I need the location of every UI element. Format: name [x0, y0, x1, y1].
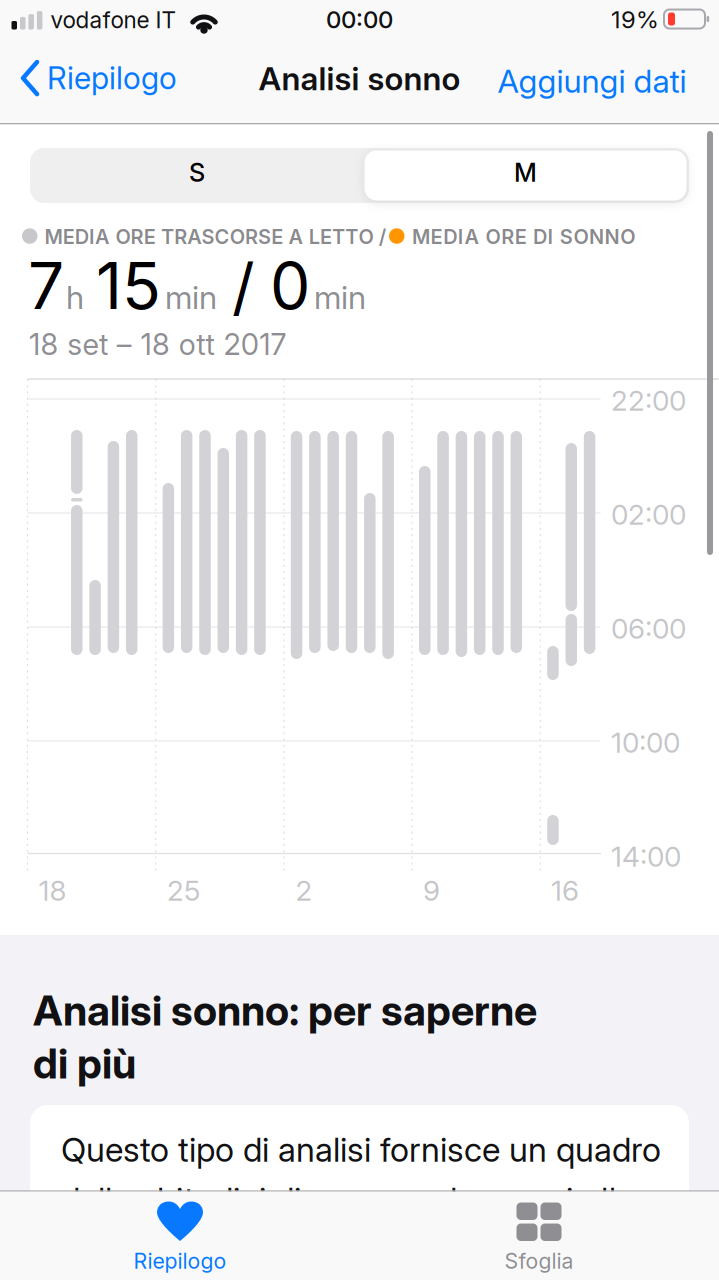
staticText: h [66, 278, 84, 316]
staticText: Analisi sonno: per saperne [33, 986, 537, 1035]
staticText: MEDIA ORE TRASCORSE A LETTO / [44, 225, 387, 249]
staticText: 02:00 [611, 498, 686, 531]
staticText: 06:00 [611, 612, 686, 645]
staticText: Riepilogo [133, 1248, 226, 1274]
staticText: 14:00 [611, 840, 681, 873]
button[interactable]: M [364, 148, 686, 197]
staticText: Analisi sonno [258, 60, 460, 97]
staticText: 0 [270, 248, 310, 323]
staticText: min [165, 278, 217, 316]
staticText: delle abitudini di sonno, ad esempio l'o… [61, 1180, 664, 1219]
staticText: Riepilogo [47, 60, 177, 96]
staticText: 25 [167, 874, 200, 907]
staticText: Sfoglia [504, 1248, 573, 1274]
staticText: vodafone IT [50, 7, 175, 33]
button[interactable]: Sfoglia [409, 1191, 669, 1280]
staticText: 16 [551, 874, 579, 907]
staticText: 9 [423, 874, 440, 907]
staticText: di più [33, 1039, 136, 1088]
staticText: 18 set – 18 ott 2017 [29, 327, 287, 362]
button[interactable]: Riepilogo [50, 1191, 310, 1280]
staticText: 10:00 [611, 726, 680, 759]
button[interactable]: Aggiungi dati [497, 62, 686, 100]
staticText: min [314, 278, 366, 316]
staticText: MEDIA ORE DI SONNO [412, 225, 635, 249]
staticText: Questo tipo di analisi fornisce un quadr… [61, 1130, 661, 1169]
staticText: 19% [611, 5, 659, 34]
staticText: 7 [28, 248, 64, 323]
staticText: 22:00 [611, 384, 686, 417]
button[interactable]: Riepilogo [21, 60, 177, 96]
staticText: 15 [96, 248, 161, 323]
button[interactable]: S [32, 148, 362, 197]
staticText: M [514, 158, 537, 187]
staticText: 00:00 [326, 5, 393, 34]
staticText: Aggiungi dati [497, 62, 686, 100]
staticText: S [189, 158, 205, 187]
staticText: 2 [295, 874, 312, 907]
staticText: / [232, 249, 255, 323]
staticText: 18 [38, 874, 66, 907]
